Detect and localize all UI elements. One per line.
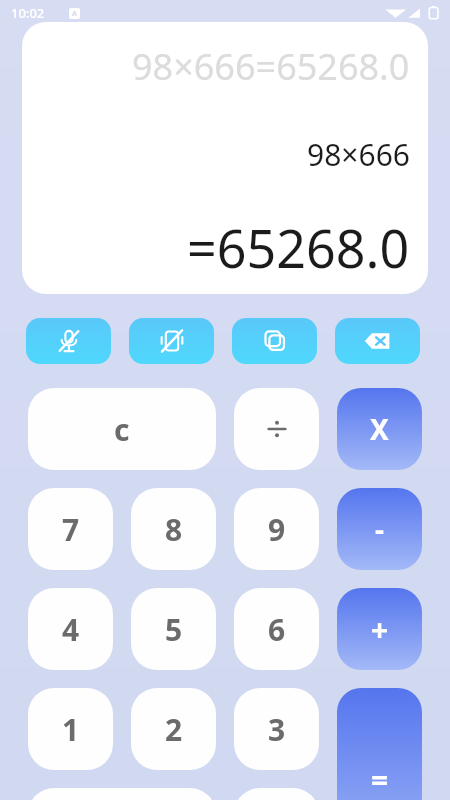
button[interactable]: 4: [28, 588, 113, 670]
button[interactable]: Mute microphone: [26, 318, 111, 364]
staticText: =65268.0: [187, 212, 410, 283]
button[interactable]: Backspace: [335, 318, 420, 364]
staticText: 10:02: [11, 4, 45, 22]
button[interactable]: 9: [234, 488, 319, 570]
staticText: 5: [165, 609, 183, 650]
button[interactable]: =: [337, 688, 422, 800]
staticText: 4: [62, 609, 80, 650]
staticText: -: [375, 510, 384, 548]
staticText: +: [371, 609, 389, 650]
staticText: 1: [62, 709, 80, 750]
button[interactable]: 7: [28, 488, 113, 570]
button[interactable]: 5: [131, 588, 216, 670]
staticText: 3: [268, 709, 286, 750]
button[interactable]: 1: [28, 688, 113, 770]
button[interactable]: 6: [234, 588, 319, 670]
staticText: c: [114, 409, 130, 450]
staticText: 6: [268, 609, 286, 650]
button[interactable]: 0: [28, 788, 216, 800]
button[interactable]: c: [28, 388, 216, 470]
button[interactable]: 3: [234, 688, 319, 770]
button[interactable]: Copy: [232, 318, 317, 364]
button[interactable]: 8: [131, 488, 216, 570]
button[interactable]: [234, 388, 319, 470]
staticText: 98×666: [307, 134, 410, 175]
button[interactable]: 2: [131, 688, 216, 770]
button[interactable]: Vibration off: [129, 318, 214, 364]
staticText: A: [72, 9, 77, 19]
button[interactable]: X: [337, 388, 422, 470]
button[interactable]: -: [337, 488, 422, 570]
staticText: 2: [165, 709, 183, 750]
button[interactable]: .: [234, 788, 319, 800]
staticText: 9: [268, 509, 286, 550]
staticText: 8: [165, 509, 183, 550]
staticText: X: [370, 410, 389, 448]
staticText: 7: [62, 509, 80, 550]
staticText: 98×666=65268.0: [132, 42, 410, 91]
staticText: =: [371, 759, 389, 800]
button[interactable]: +: [337, 588, 422, 670]
